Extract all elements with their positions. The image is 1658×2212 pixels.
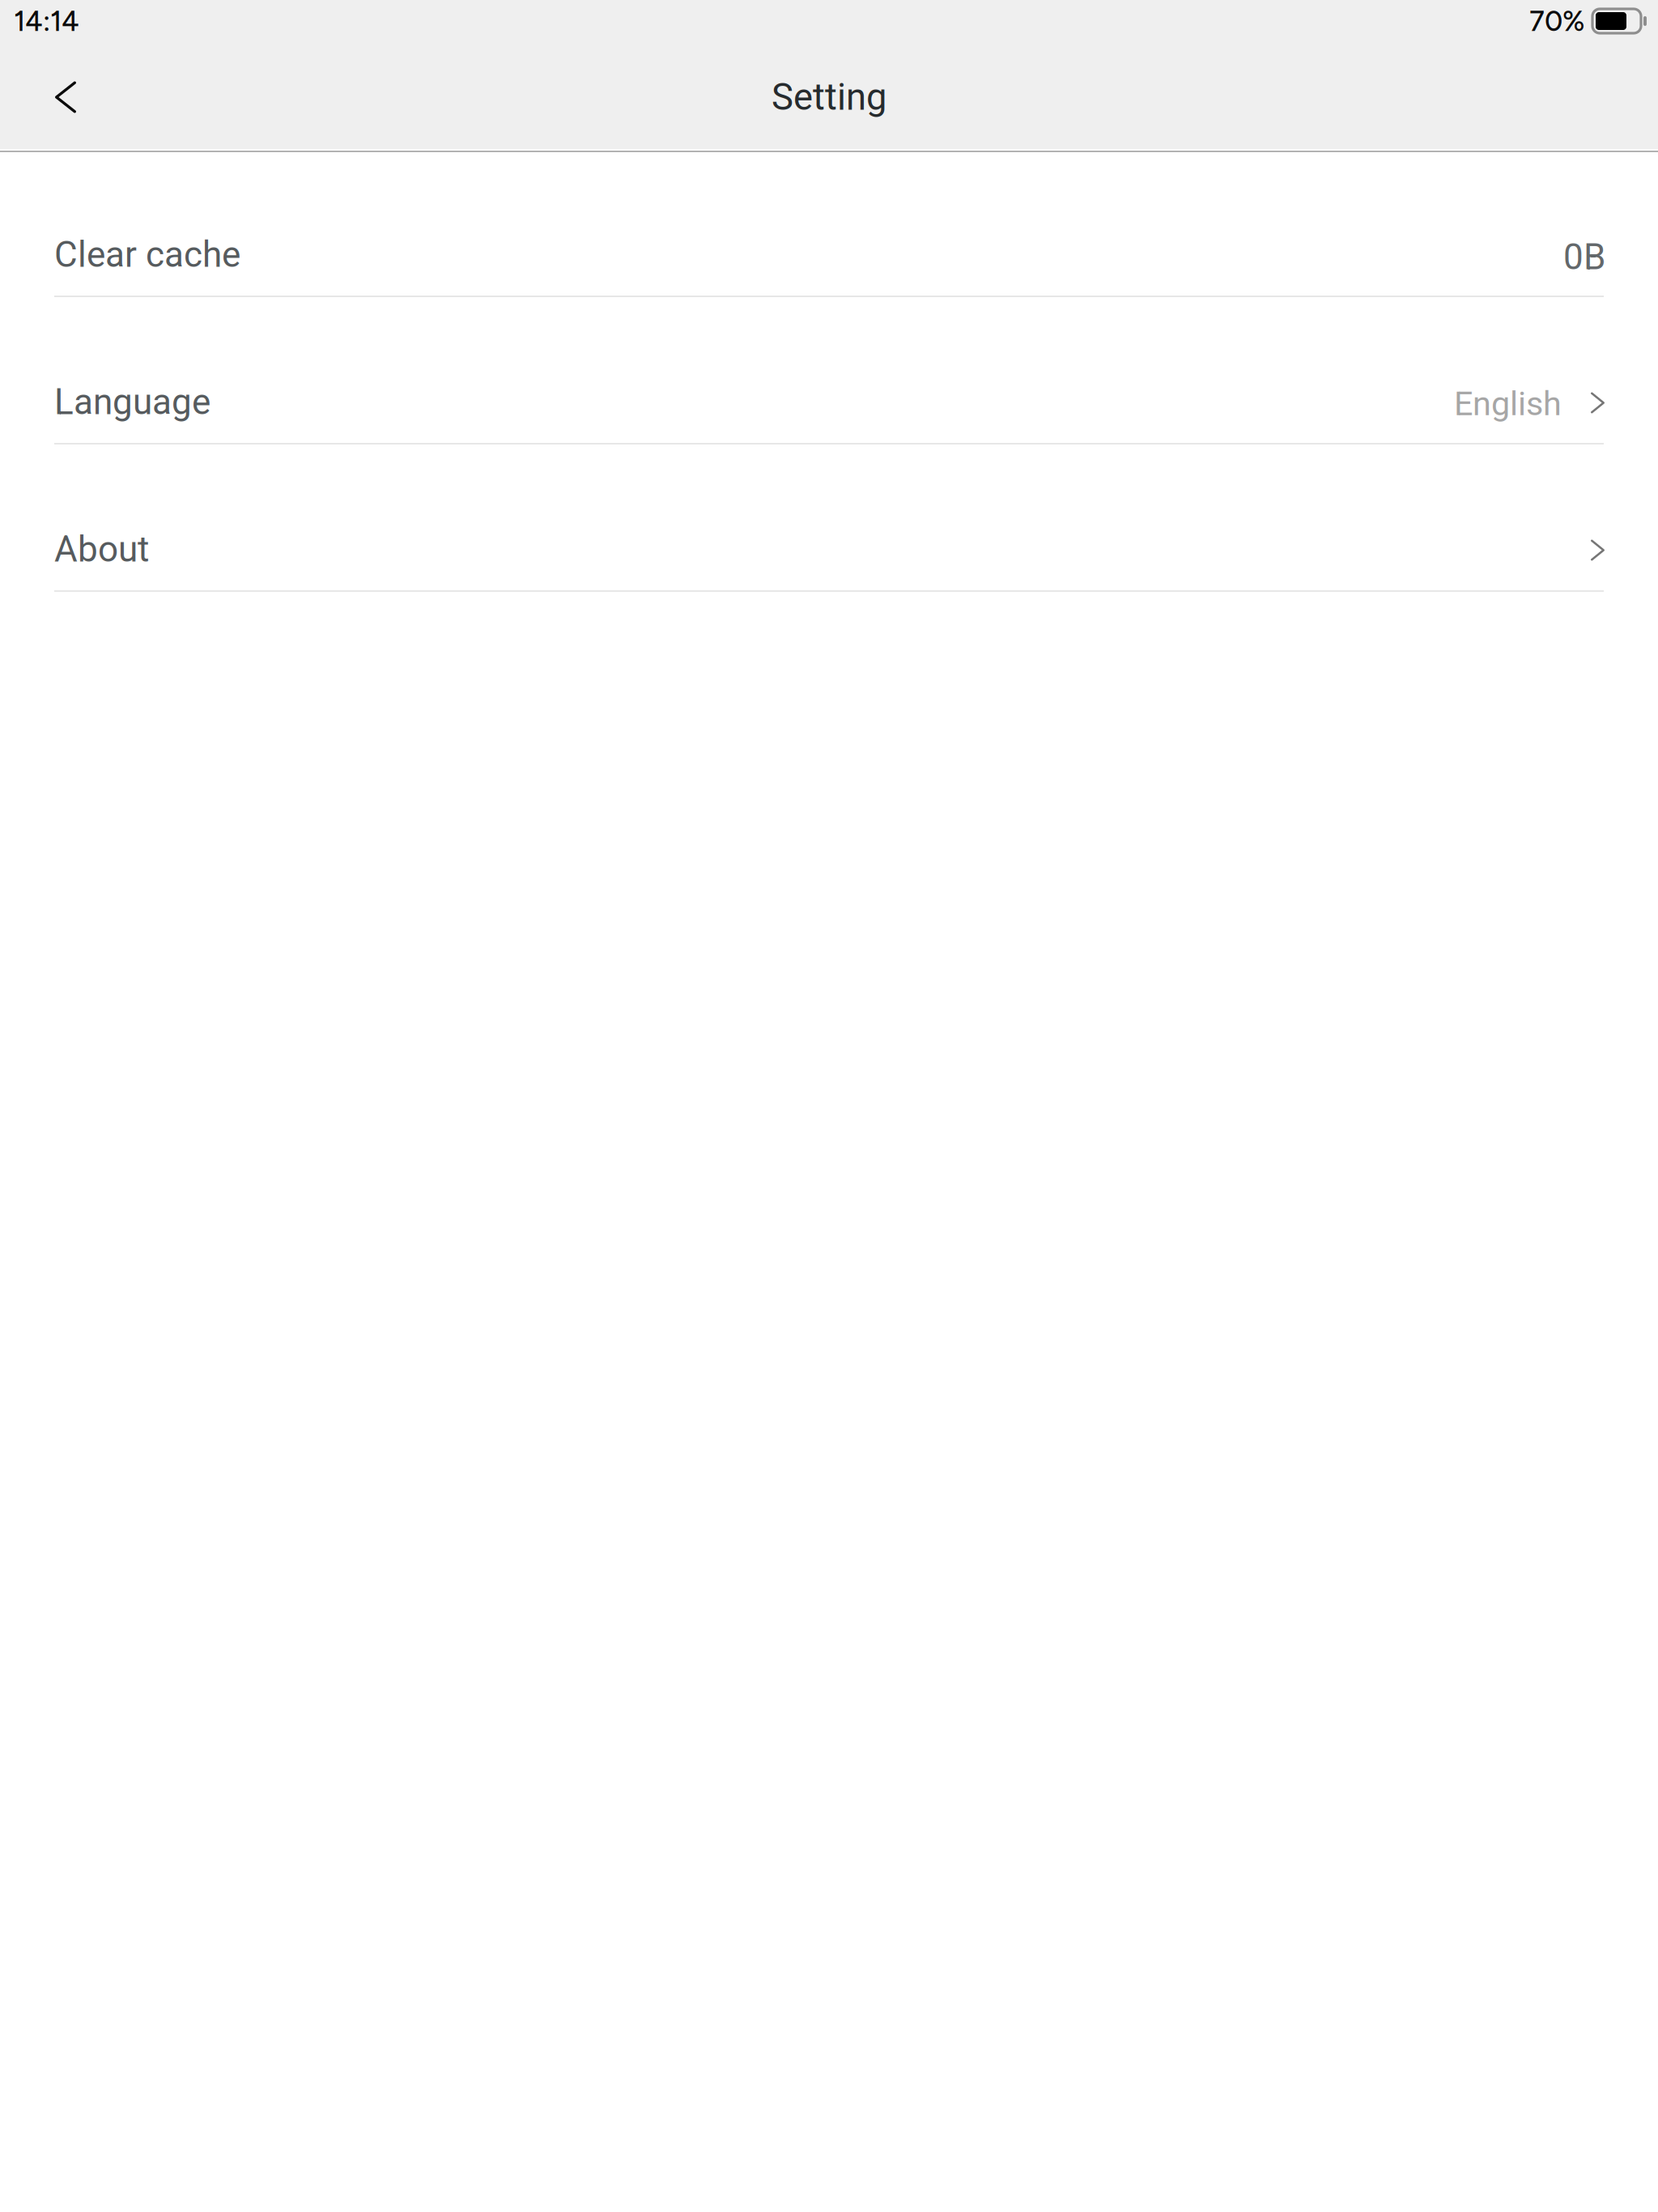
staticText: 14:14 [14,4,79,38]
button[interactable]: Back [34,62,97,132]
staticText: Setting [772,76,886,119]
staticText: English [1454,384,1562,423]
staticText: About [54,528,149,570]
button[interactable]: About [0,507,1658,592]
staticText: Language [54,381,210,423]
staticText: 0B [1563,236,1605,278]
staticText: Clear cache [54,234,240,276]
button[interactable]: Clear cache [0,212,1658,297]
staticText: 70% [1529,4,1584,38]
button[interactable]: Language [0,359,1658,445]
